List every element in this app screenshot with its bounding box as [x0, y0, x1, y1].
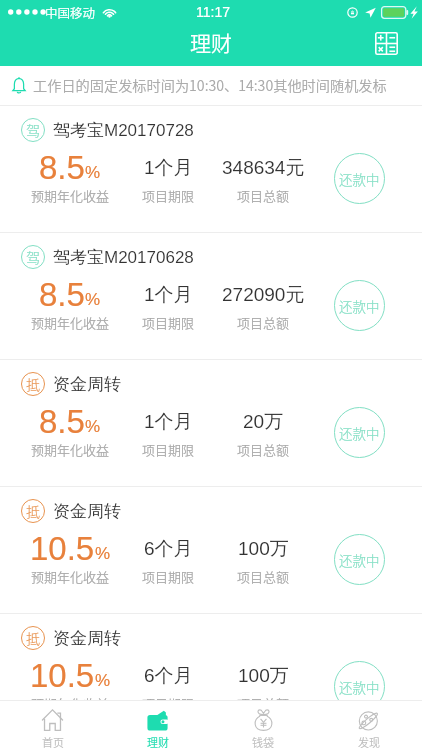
- staticText: 钱袋: [252, 734, 274, 750]
- staticText: 项目期限: [142, 694, 195, 713]
- staticText: 预期年化收益: [31, 313, 110, 332]
- staticText: 预期年化收益: [31, 440, 110, 459]
- staticText: %: [95, 671, 111, 690]
- staticText: 项目总额: [237, 313, 290, 332]
- staticText: 20万: [243, 410, 284, 434]
- staticText: 抵: [26, 501, 40, 521]
- staticText: 还款中: [339, 550, 380, 570]
- staticText: 发现: [358, 734, 380, 750]
- staticText: 项目期限: [142, 440, 195, 459]
- button[interactable]: 驾: [0, 233, 422, 359]
- staticText: 项目总额: [237, 186, 290, 205]
- button[interactable]: 驾: [0, 106, 422, 232]
- staticText: 理财: [190, 27, 232, 57]
- staticText: 1个月: [144, 283, 193, 307]
- button[interactable]: 抵: [0, 487, 422, 613]
- staticText: 项目总额: [237, 440, 290, 459]
- staticText: 工作日的固定发标时间为10:30、14:30其他时间随机发标: [33, 75, 387, 96]
- staticText: 100万: [238, 537, 289, 561]
- button[interactable]: 计算器: [368, 25, 404, 61]
- staticText: 1个月: [144, 410, 193, 434]
- button[interactable]: 抵: [0, 360, 422, 486]
- staticText: 8.5: [39, 149, 85, 186]
- staticText: 8.5: [39, 276, 85, 313]
- staticText: 6个月: [144, 664, 193, 688]
- staticText: 项目期限: [142, 186, 195, 205]
- staticText: 抵: [26, 374, 40, 394]
- staticText: 100万: [238, 664, 289, 688]
- staticText: 理财: [147, 734, 169, 750]
- staticText: 抵: [26, 628, 40, 648]
- staticText: 资金周转: [53, 628, 121, 649]
- staticText: 还款中: [339, 423, 380, 443]
- staticText: 8.5: [39, 403, 85, 440]
- staticText: 还款中: [339, 169, 380, 189]
- button[interactable]: 还款中: [334, 153, 385, 204]
- staticText: 项目期限: [142, 313, 195, 332]
- staticText: 预期年化收益: [31, 694, 110, 713]
- button[interactable]: 还款中: [334, 661, 385, 712]
- button[interactable]: 发现: [316, 701, 422, 750]
- staticText: 首页: [42, 734, 64, 750]
- button[interactable]: 抵: [0, 614, 422, 700]
- staticText: 项目期限: [142, 567, 195, 586]
- staticText: %: [85, 290, 101, 309]
- staticText: 预期年化收益: [31, 186, 110, 205]
- staticText: 驾: [26, 120, 40, 140]
- staticText: %: [95, 544, 111, 563]
- staticText: 中国移动: [45, 3, 96, 21]
- staticText: 10.5: [30, 530, 95, 567]
- staticText: 10.5: [30, 657, 95, 694]
- staticText: 项目总额: [237, 694, 290, 713]
- staticText: 还款中: [339, 296, 380, 316]
- staticText: 资金周转: [53, 374, 121, 395]
- staticText: 272090元: [222, 283, 305, 307]
- staticText: 预期年化收益: [31, 567, 110, 586]
- button[interactable]: 钱袋: [210, 701, 316, 750]
- button[interactable]: 首页: [0, 701, 105, 750]
- staticText: 348634元: [222, 156, 305, 180]
- staticText: %: [85, 163, 101, 182]
- staticText: 1个月: [144, 156, 193, 180]
- staticText: 资金周转: [53, 501, 121, 522]
- staticText: 6个月: [144, 537, 193, 561]
- staticText: 驾考宝M20170728: [53, 120, 194, 141]
- button[interactable]: 理财: [105, 701, 210, 750]
- staticText: %: [85, 417, 101, 436]
- staticText: 驾: [26, 247, 40, 267]
- staticText: 还款中: [339, 677, 380, 697]
- button[interactable]: 还款中: [334, 280, 385, 331]
- button[interactable]: 还款中: [334, 534, 385, 585]
- button[interactable]: 还款中: [334, 407, 385, 458]
- staticText: 11:17: [196, 4, 230, 20]
- staticText: 驾考宝M20170628: [53, 247, 194, 268]
- staticText: 项目总额: [237, 567, 290, 586]
